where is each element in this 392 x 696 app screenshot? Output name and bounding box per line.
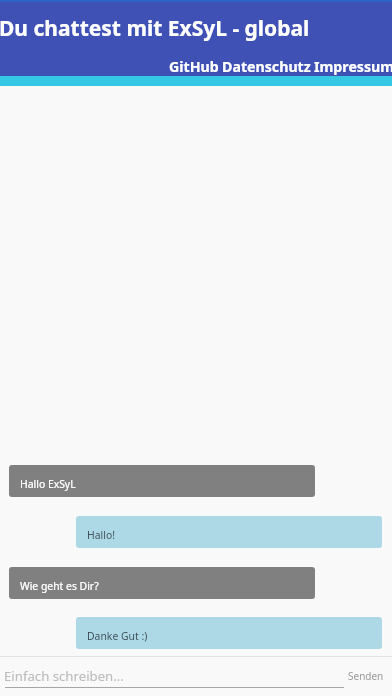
button[interactable]: Danke Gut :) [76,617,382,649]
button[interactable]: Datenschutz [222,57,311,76]
staticText: Du chattest mit ExSyL - global [0,14,310,43]
button[interactable]: Wie geht es Dir? [9,567,315,599]
staticText: Wie geht es Dir? [20,579,99,593]
staticText: Hallo! [87,528,115,542]
button[interactable]: Impressum [314,57,392,76]
button[interactable]: Senden [344,657,392,696]
staticText: Einfach schreiben... [4,667,124,685]
button[interactable]: Hallo ExSyL [9,465,315,497]
button[interactable]: Einfach schreiben... [0,657,344,696]
button[interactable]: GitHub [169,57,219,76]
staticText: Senden [348,669,384,683]
staticText: Danke Gut :) [87,629,148,643]
staticText: Hallo ExSyL [20,477,76,491]
button[interactable]: Hallo! [76,516,382,548]
